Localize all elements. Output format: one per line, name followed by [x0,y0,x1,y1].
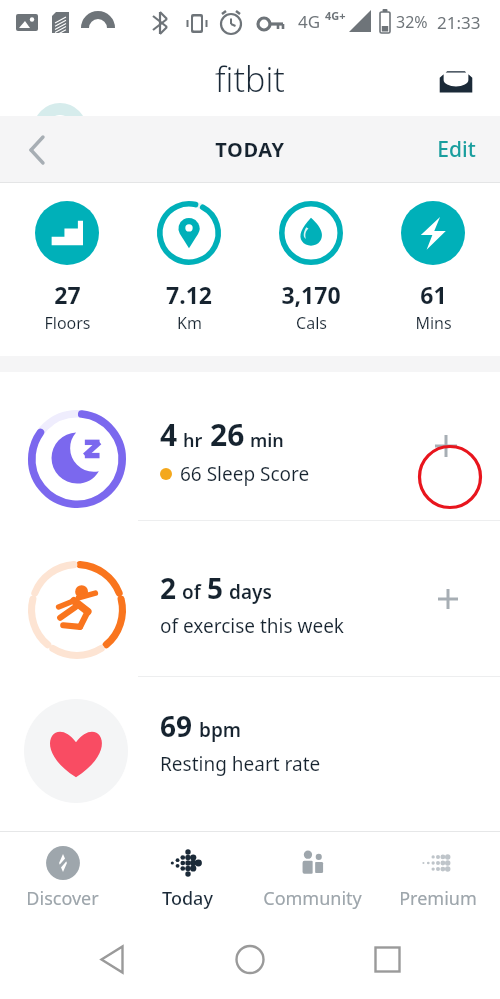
button[interactable]: Add exercise [422,573,474,625]
staticText: 69 [160,707,193,745]
staticText: 7.12 [166,279,212,310]
button[interactable]: Add sleep [420,420,472,472]
staticText: 4G [298,10,321,33]
button[interactable]: Messages [434,59,478,103]
staticText: of [182,579,201,605]
button[interactable]: 27 [12,183,122,356]
staticText: 61 [420,279,447,310]
staticText: 66 Sleep Score [180,461,310,487]
staticText: Cals [296,312,327,334]
button[interactable]: 2 [0,521,500,676]
button[interactable]: Discover [0,832,125,920]
staticText: hr [183,428,203,453]
staticText: Community [263,886,362,911]
button[interactable]: Premium [375,832,500,920]
staticText: 32% [396,11,428,33]
staticText: Resting heart rate [160,751,321,777]
staticText: 4G+ [325,8,346,23]
staticText: 5 [207,569,224,607]
staticText: TODAY [215,136,285,163]
button[interactable]: 61 [378,183,488,356]
staticText: 26 [210,414,245,455]
staticText: of exercise this week [160,613,344,639]
button[interactable]: Profile [33,103,87,157]
button[interactable]: 4 [0,372,500,520]
staticText: Today [162,886,213,911]
button[interactable]: 7.12 [134,183,244,356]
staticText: min [250,428,284,453]
staticText: 27 [54,279,81,310]
button[interactable]: Edit [437,116,500,183]
button[interactable]: Community [250,832,375,920]
staticText: Discover [26,886,99,911]
staticText: Floors [44,312,91,334]
button[interactable]: Back [0,116,70,183]
staticText: Premium [399,886,477,911]
staticText: 21:33 [437,11,481,34]
staticText: Km [177,312,202,334]
staticText: days [229,579,272,605]
staticText: bpm [199,717,242,743]
staticText: fitbit [215,56,285,102]
staticText: 4 [160,414,178,455]
staticText: Mins [415,312,452,334]
staticText: 2 [160,569,177,607]
button[interactable]: 69 [0,677,500,795]
staticText: 3,170 [281,279,341,310]
staticText: Edit [437,135,476,164]
button[interactable]: Today [125,832,250,920]
button[interactable]: 3,170 [256,183,366,356]
